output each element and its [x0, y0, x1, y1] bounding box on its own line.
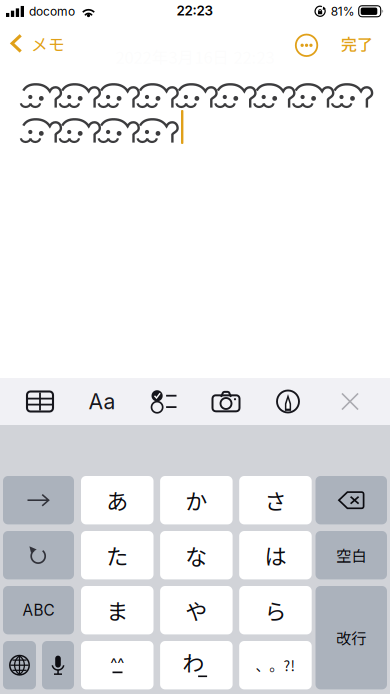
button[interactable]: ^^ — [81, 641, 153, 689]
staticText: メモ — [31, 31, 65, 55]
staticText: あ — [106, 484, 128, 516]
staticText: 81% — [331, 4, 355, 18]
staticText: ま — [106, 594, 128, 626]
staticText: 空白 — [336, 544, 366, 566]
staticText: 22:23 — [176, 2, 213, 19]
staticText: ABC — [22, 601, 54, 619]
staticText: ら — [264, 594, 286, 626]
button[interactable]: ら — [239, 586, 312, 634]
button[interactable] — [3, 641, 36, 689]
staticText: さ — [264, 484, 286, 516]
button[interactable]: た — [81, 531, 153, 579]
button[interactable]: わ — [160, 641, 233, 689]
button[interactable]: Checklist — [142, 378, 186, 425]
button[interactable]: Format — [80, 378, 124, 425]
staticText: わ — [182, 646, 204, 678]
staticText: 改行 — [336, 627, 366, 649]
staticText: docomo — [29, 4, 75, 19]
button[interactable] — [42, 641, 74, 689]
button[interactable]: は — [239, 531, 312, 579]
staticText: Aa — [88, 389, 115, 414]
staticText: ^^ — [110, 654, 124, 672]
staticText: た — [106, 539, 128, 571]
button[interactable]: More — [286, 23, 327, 67]
button[interactable]: 空白 — [315, 531, 387, 579]
staticText: 、。?! — [255, 655, 295, 675]
button[interactable]: Markup — [266, 378, 310, 425]
button[interactable] — [3, 476, 74, 524]
staticText: な — [185, 539, 207, 571]
staticText: や — [185, 594, 207, 626]
button[interactable]: あ — [81, 476, 153, 524]
button[interactable]: Camera — [204, 378, 248, 425]
button[interactable]: 改行 — [315, 586, 387, 689]
staticText: か — [185, 484, 207, 516]
button[interactable]: か — [160, 476, 233, 524]
button[interactable]: ABC — [3, 586, 74, 634]
button[interactable] — [315, 476, 387, 524]
button[interactable]: 完了 — [327, 22, 390, 66]
button[interactable]: ま — [81, 586, 153, 634]
staticText: は — [264, 539, 286, 571]
staticText: 完了 — [341, 32, 373, 55]
button[interactable]: Table — [18, 378, 62, 425]
button[interactable] — [3, 531, 74, 579]
button[interactable]: さ — [239, 476, 312, 524]
button[interactable]: な — [160, 531, 233, 579]
button[interactable]: や — [160, 586, 233, 634]
button[interactable]: 、。?! — [239, 641, 312, 689]
button[interactable]: Hide keyboard — [328, 378, 372, 425]
button[interactable]: メモ — [0, 21, 75, 65]
